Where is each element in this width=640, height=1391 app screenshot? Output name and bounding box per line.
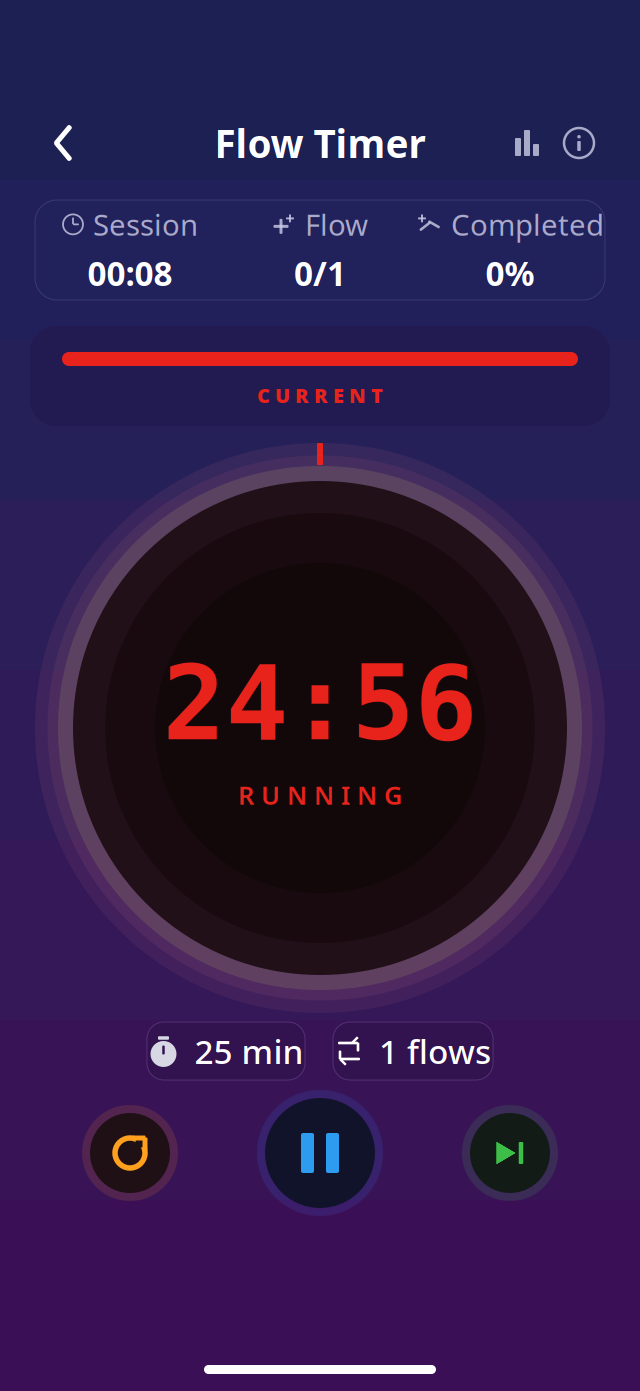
button[interactable]: 25 min [147, 1022, 305, 1080]
staticText: 0% [485, 251, 534, 295]
button[interactable]: Information [553, 117, 605, 169]
staticText: 25 min [194, 1029, 303, 1073]
staticText: 0/1 [294, 251, 346, 295]
staticText: R U N N I N G [238, 778, 402, 812]
staticText: 24:56 [162, 644, 477, 762]
staticText: Completed [451, 205, 604, 244]
staticText: 00:08 [87, 251, 172, 295]
button[interactable]: Reset timer [75, 1098, 185, 1208]
button[interactable]: Back [35, 115, 91, 171]
staticText: 1 flows [379, 1029, 491, 1073]
button[interactable]: Statistics [501, 117, 553, 169]
staticText: Session [93, 205, 198, 244]
staticText: Flow Timer [214, 117, 425, 169]
staticText: C U R R E N T [257, 382, 383, 409]
button[interactable]: Pause timer [255, 1088, 385, 1218]
button[interactable]: Skip to next [455, 1098, 565, 1208]
staticText: Flow [305, 205, 368, 244]
button[interactable]: 1 flows [333, 1022, 493, 1080]
